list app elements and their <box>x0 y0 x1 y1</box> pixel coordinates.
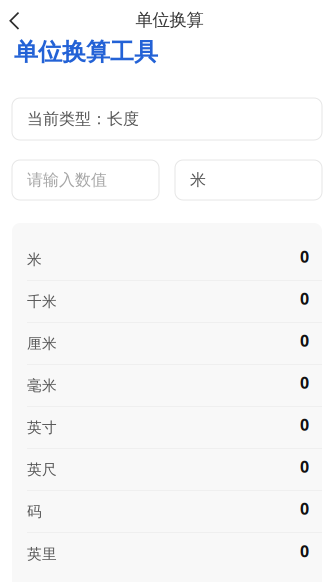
staticText: 厘米 <box>27 334 57 352</box>
button[interactable]: 千米 <box>12 281 322 323</box>
staticText: 英尺 <box>27 460 57 478</box>
staticText: 0 <box>300 330 309 351</box>
staticText: 0 <box>300 372 309 393</box>
button[interactable]: Back <box>0 10 28 30</box>
staticText: 千米 <box>27 292 57 310</box>
staticText: 0 <box>300 246 309 267</box>
staticText: 当前类型：长度 <box>27 109 139 129</box>
staticText: 0 <box>300 456 309 477</box>
button[interactable]: 当前类型：长度 <box>12 98 322 140</box>
staticText: 0 <box>300 288 309 309</box>
button[interactable]: 请输入数值 <box>12 160 159 200</box>
staticText: 英寸 <box>27 418 57 436</box>
staticText: 0 <box>300 540 309 562</box>
staticText: 米 <box>27 250 42 268</box>
button[interactable]: 英尺 <box>12 449 322 491</box>
button[interactable]: 米 <box>175 160 322 200</box>
button[interactable]: 米 <box>12 239 322 281</box>
button[interactable]: 英里 <box>12 533 322 575</box>
button[interactable]: 码 <box>12 491 322 533</box>
staticText: 请输入数值 <box>27 170 107 190</box>
staticText: 英里 <box>27 545 57 563</box>
staticText: 单位换算 <box>135 9 203 31</box>
staticText: 码 <box>27 502 42 520</box>
staticText: 单位换算工具 <box>14 37 158 67</box>
staticText: 米 <box>190 170 206 190</box>
button[interactable]: 英寸 <box>12 407 322 449</box>
button[interactable]: 厘米 <box>12 323 322 365</box>
button[interactable]: 毫米 <box>12 365 322 407</box>
staticText: 毫米 <box>27 376 57 394</box>
staticText: 0 <box>300 414 309 435</box>
staticText: 0 <box>300 498 309 519</box>
